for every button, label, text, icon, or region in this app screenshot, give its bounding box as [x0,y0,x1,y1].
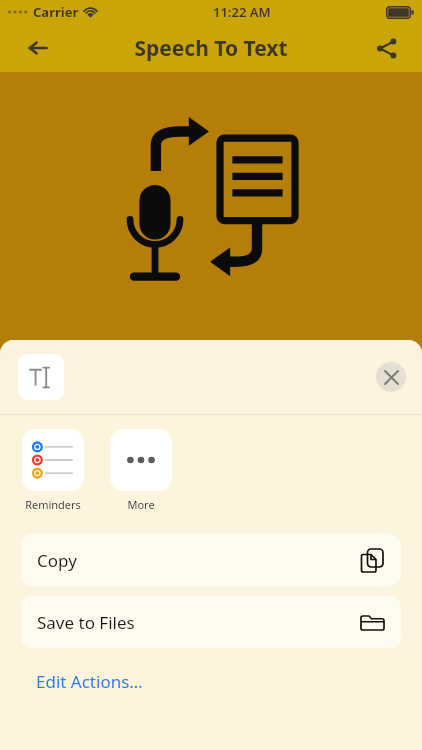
staticText: 11:22 AM [213,3,271,21]
button[interactable]: Edit Actions… [0,664,422,698]
staticText: Reminders [25,497,81,512]
staticText: Save to Files [37,611,135,634]
staticText: Edit Actions… [36,670,143,693]
button[interactable]: Save to Files [21,596,401,648]
button[interactable]: More [110,429,172,512]
button[interactable]: Close [376,362,406,392]
staticText: Speech To Text [134,34,288,63]
staticText: Carrier [33,3,79,21]
button[interactable]: Back [14,24,62,72]
staticText: Copy [37,549,77,572]
button[interactable]: Share [362,24,410,72]
button[interactable]: Copy [21,534,401,586]
button[interactable] [18,354,64,400]
button[interactable]: Reminders [22,429,84,512]
staticText: More [127,497,155,512]
